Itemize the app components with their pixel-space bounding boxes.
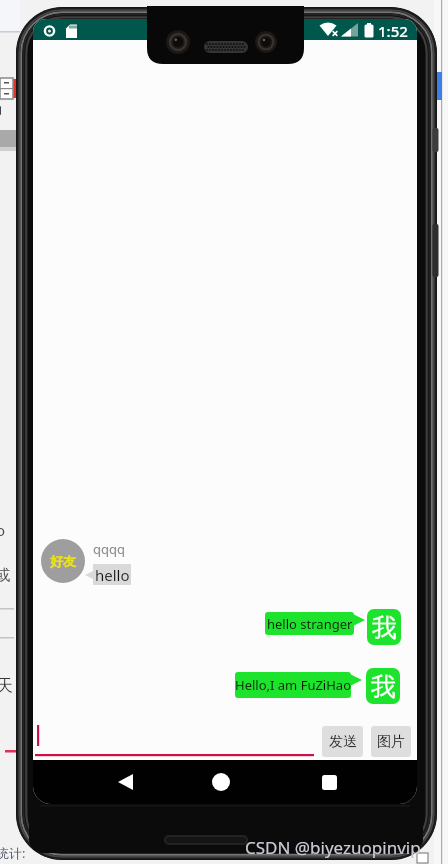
staticText: 统计: — [0, 844, 26, 862]
button[interactable]: 好友 — [41, 539, 85, 583]
button[interactable]: hello — [93, 564, 131, 585]
staticText: on — [0, 520, 11, 546]
staticText: hello stranger — [267, 615, 353, 633]
button[interactable] — [33, 719, 317, 760]
button[interactable] — [101, 760, 149, 804]
staticText: 好友 — [50, 553, 76, 569]
staticText: 1:52 — [378, 21, 408, 41]
staticText: 发送 — [329, 733, 357, 751]
button[interactable] — [305, 760, 353, 804]
staticText: 天 — [0, 676, 11, 696]
button[interactable]: Hello,I am FuZiHao — [235, 672, 351, 698]
staticText: hello — [95, 565, 130, 585]
button[interactable] — [197, 760, 245, 804]
staticText: qqqq — [93, 540, 125, 558]
button[interactable]: 我 — [366, 668, 400, 704]
staticText: 我 — [371, 671, 396, 702]
staticText: CSDN @biyezuopinvip — [245, 836, 421, 859]
staticText: 或 — [0, 566, 7, 585]
button[interactable]: 发送 — [322, 726, 363, 757]
staticText: 图片 — [377, 733, 405, 751]
button[interactable]: 我 — [367, 609, 401, 645]
staticText: 我 — [372, 612, 397, 643]
button[interactable]: 图片 — [371, 726, 411, 757]
button[interactable]: hello stranger — [265, 612, 354, 635]
staticText: 动滚 — [0, 101, 5, 123]
staticText: Hello,I am FuZiHao — [235, 676, 351, 694]
